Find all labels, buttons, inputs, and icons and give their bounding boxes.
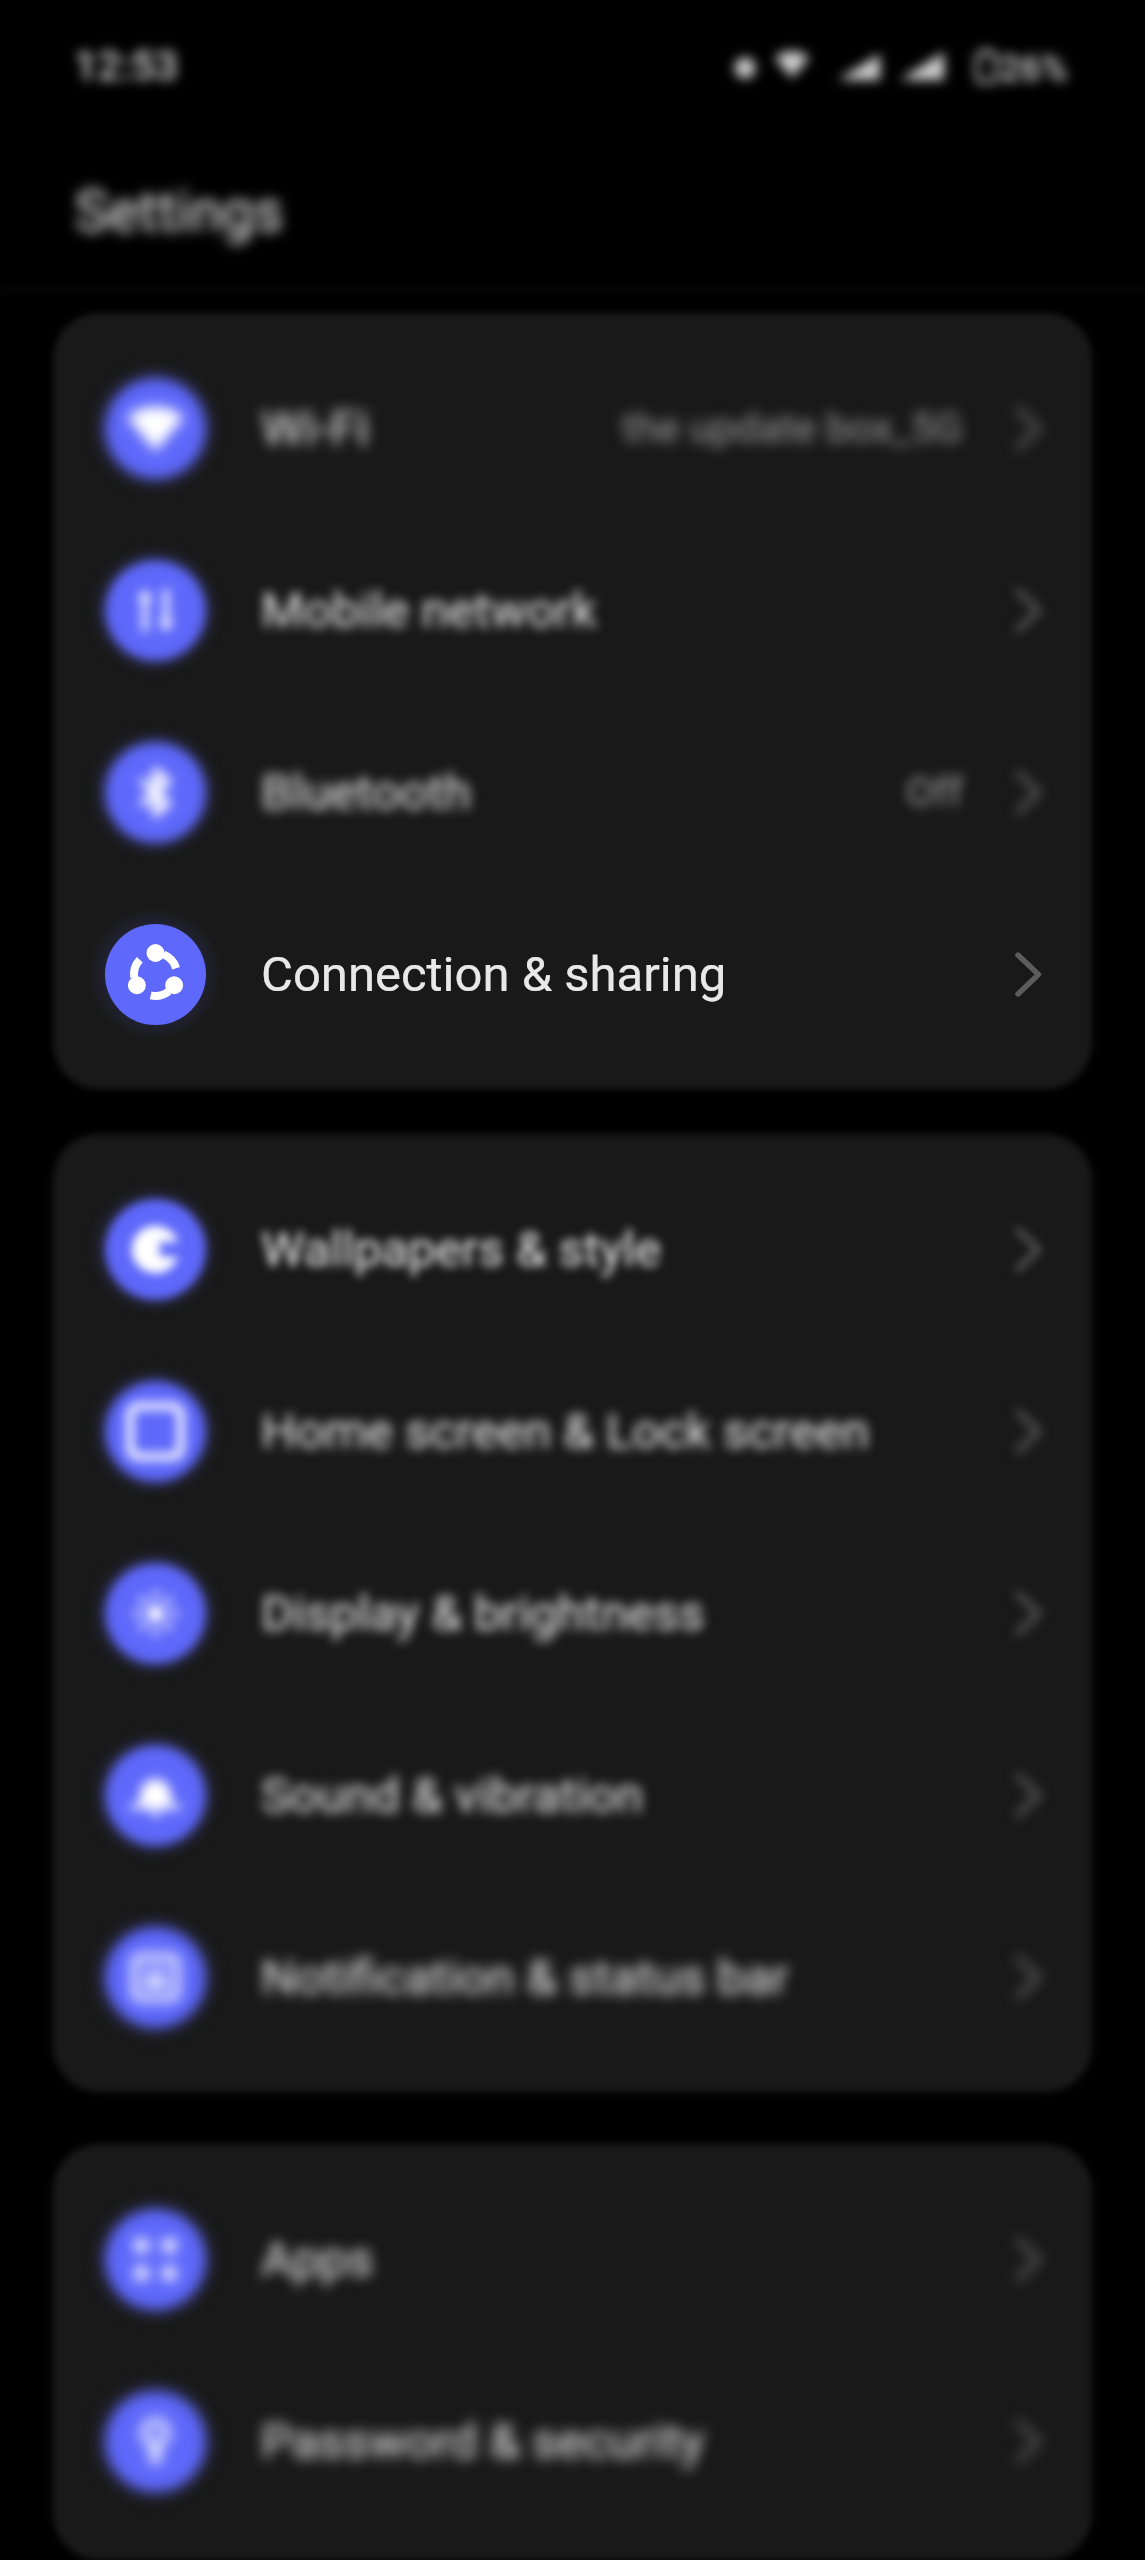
staticText: Bluetooth (261, 764, 471, 821)
staticText: Home screen & Lock screen (261, 1403, 870, 1460)
button[interactable]: Mobile network (0, 519, 1145, 701)
staticText: Display & brightness (261, 1585, 705, 1642)
staticText: Connection & sharing (261, 946, 727, 1003)
button[interactable]: Wi-Fi (0, 337, 1145, 519)
staticText: Sound & vibration (261, 1767, 643, 1824)
staticText: Wi-Fi (261, 400, 369, 457)
staticText: Password & security (261, 2413, 704, 2470)
staticText: Off (906, 768, 963, 816)
staticText: the update box_5G (622, 404, 963, 452)
staticText: Apps (261, 2231, 374, 2288)
button[interactable]: Password & security (0, 2350, 1145, 2532)
button[interactable]: Home screen & Lock screen (0, 1340, 1145, 1522)
staticText: Mobile network (261, 582, 597, 639)
button[interactable]: Display & brightness (0, 1522, 1145, 1704)
button[interactable]: Bluetooth (0, 701, 1145, 883)
staticText: 26% (1000, 48, 1068, 90)
button[interactable]: Sound & vibration (0, 1704, 1145, 1886)
staticText: Notification & status bar (261, 1949, 789, 2006)
button[interactable]: Wallpapers & style (0, 1158, 1145, 1340)
staticText: 12:53 (74, 42, 179, 90)
button[interactable]: Connection & sharing (0, 883, 1145, 1065)
button[interactable]: Notification & status bar (0, 1886, 1145, 2068)
staticText: Settings (75, 178, 284, 245)
button[interactable]: Apps (0, 2168, 1145, 2350)
staticText: Wallpapers & style (261, 1221, 661, 1278)
